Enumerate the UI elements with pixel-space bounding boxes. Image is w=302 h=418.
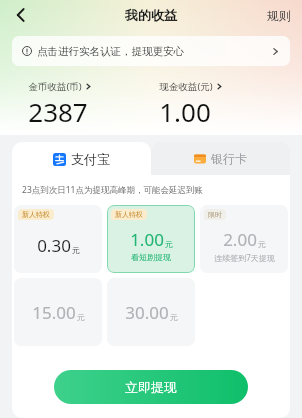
staticText: 2387: [28, 94, 88, 129]
button[interactable]: 30.00: [107, 278, 195, 346]
staticText: 元: [170, 312, 178, 322]
staticText: 我的收益: [125, 7, 177, 23]
staticText: 1.00: [130, 228, 164, 251]
staticText: 立即提现: [125, 379, 177, 395]
staticText: 点击进行实名认证，提现更安心: [37, 45, 184, 58]
staticText: 元: [77, 312, 85, 322]
staticText: 新人特权: [115, 210, 143, 219]
staticText: 现金收益(元): [159, 80, 213, 93]
button[interactable]: 新人特权: [14, 205, 102, 273]
staticText: 元: [72, 245, 80, 255]
staticText: 限时: [208, 210, 222, 219]
staticText: 2.00: [223, 228, 257, 251]
button[interactable]: 新人特权: [107, 205, 195, 273]
staticText: 元: [258, 239, 266, 249]
staticText: 金币收益(币): [28, 80, 82, 93]
staticText: 新人特权: [22, 210, 50, 219]
button[interactable]: 立即提现: [54, 370, 248, 404]
button[interactable]: 限时: [200, 205, 288, 273]
staticText: 看短剧提现: [131, 252, 171, 262]
staticText: 规则: [267, 8, 291, 23]
staticText: 30.00: [125, 301, 169, 324]
button[interactable]: 15.00: [14, 278, 102, 346]
button[interactable]: Back: [6, 0, 36, 30]
button[interactable]: 规则: [264, 4, 294, 27]
staticText: 1.00: [159, 94, 211, 129]
button[interactable]: 支付宝: [12, 142, 151, 175]
button[interactable]: 点击进行实名认证，提现更安心: [12, 36, 290, 66]
staticText: 0.30: [37, 234, 71, 257]
staticText: 15.00: [32, 301, 76, 324]
button[interactable]: 现金收益(元): [159, 80, 302, 129]
staticText: 元: [165, 239, 173, 249]
button[interactable]: 金币收益(币): [28, 80, 151, 129]
staticText: 连续签到7天提现: [214, 252, 275, 263]
staticText: 支付宝: [71, 151, 110, 167]
button[interactable]: 银行卡: [151, 142, 290, 175]
staticText: 银行卡: [211, 151, 247, 166]
staticText: 23点到次日11点为提现高峰期，可能会延迟到账: [22, 184, 203, 196]
